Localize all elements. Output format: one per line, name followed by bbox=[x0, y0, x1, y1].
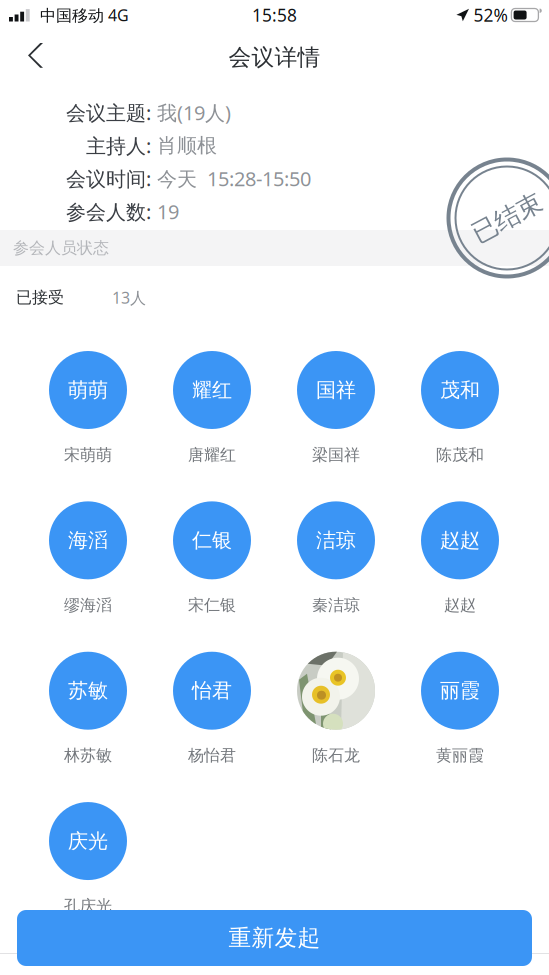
staticText: 会议详情 bbox=[228, 44, 320, 71]
staticText: 萌萌 bbox=[68, 378, 108, 402]
button[interactable]: 重新发起 bbox=[17, 910, 532, 966]
staticText: 仁银 bbox=[192, 528, 232, 553]
staticText: 缪海滔 bbox=[64, 595, 112, 615]
staticText: 洁琼 bbox=[316, 528, 356, 553]
staticText: 我(19人) bbox=[157, 99, 231, 126]
staticText: 陈石龙 bbox=[312, 746, 360, 765]
staticText: 赵赵 bbox=[440, 528, 480, 553]
staticText: 会议时间: bbox=[66, 165, 151, 192]
button[interactable]: Back bbox=[0, 36, 62, 79]
staticText: 国祥 bbox=[316, 378, 356, 402]
staticText: 唐耀红 bbox=[188, 445, 236, 465]
staticText: 黄丽霞 bbox=[436, 746, 484, 765]
staticText: 参会人员状态 bbox=[13, 238, 109, 258]
staticText: 苏敏 bbox=[68, 678, 108, 703]
staticText: 茂和 bbox=[440, 378, 480, 402]
staticText: 会议主题: bbox=[66, 99, 151, 126]
staticText: 参会人数: bbox=[66, 198, 151, 225]
staticText: 宋萌萌 bbox=[64, 445, 112, 465]
staticText: 陈茂和 bbox=[436, 445, 484, 465]
staticText: 宋仁银 bbox=[188, 595, 236, 615]
staticText: 杨怡君 bbox=[188, 746, 236, 765]
staticText: 52% bbox=[473, 3, 507, 26]
staticText: 13人 bbox=[112, 287, 146, 308]
staticText: 中国移动 4G bbox=[30, 4, 129, 26]
staticText: 已结束 bbox=[469, 202, 544, 233]
staticText: 19 bbox=[157, 198, 179, 225]
staticText: 耀红 bbox=[192, 378, 232, 402]
staticText: 重新发起 bbox=[228, 924, 320, 952]
staticText: 赵赵 bbox=[444, 595, 476, 615]
staticText: 主持人: bbox=[86, 132, 151, 159]
staticText: 梁国祥 bbox=[312, 445, 360, 465]
staticText: 今天 15:28-15:50 bbox=[157, 165, 311, 192]
staticText: 怡君 bbox=[192, 678, 232, 703]
staticText: 肖顺根 bbox=[157, 133, 217, 158]
staticText: 15:58 bbox=[252, 3, 297, 26]
staticText: 林苏敏 bbox=[64, 746, 112, 765]
staticText: 海滔 bbox=[68, 528, 108, 553]
staticText: 孔庆光 bbox=[64, 896, 112, 916]
staticText: 秦洁琼 bbox=[312, 595, 360, 615]
staticText: 庆光 bbox=[68, 829, 108, 853]
staticText: 丽霞 bbox=[440, 678, 480, 703]
staticText: 已接受 bbox=[16, 288, 64, 307]
